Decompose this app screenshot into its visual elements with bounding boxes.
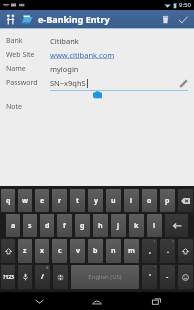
staticText: b: [93, 246, 98, 256]
staticText: j: [117, 221, 120, 231]
staticText: ': [149, 272, 151, 282]
staticText: ": [154, 265, 156, 270]
button[interactable]: mic: [18, 265, 32, 289]
button[interactable]: i: [124, 189, 139, 212]
staticText: u: [111, 196, 116, 206]
staticText: s: [28, 221, 32, 231]
button[interactable]: p: [160, 189, 175, 212]
staticText: Name: [6, 64, 50, 74]
button[interactable]: h: [93, 214, 108, 237]
staticText: l: [153, 221, 156, 231]
button[interactable]: Entry type: [19, 12, 34, 27]
button[interactable]: e: [35, 189, 49, 212]
button[interactable]: f: [57, 214, 72, 237]
button[interactable]: g: [75, 214, 90, 237]
staticText: Web Site: [6, 50, 50, 60]
staticText: ?: [172, 239, 174, 244]
button[interactable]: English (US): [71, 265, 139, 289]
button[interactable]: Save: [174, 11, 191, 28]
button[interactable]: a: [6, 214, 20, 237]
button[interactable]: j: [111, 214, 126, 237]
button[interactable]: w: [18, 189, 32, 212]
button[interactable]: t: [70, 189, 85, 212]
staticText: i: [130, 196, 133, 206]
staticText: a: [11, 221, 16, 231]
button[interactable]: b: [88, 239, 103, 263]
staticText: mylogin: [50, 64, 79, 74]
button[interactable]: Note: [0, 100, 194, 114]
staticText: o: [147, 196, 152, 206]
button[interactable]: del: [178, 189, 193, 212]
staticText: -: [166, 272, 169, 282]
button[interactable]: shift: [178, 239, 193, 263]
button[interactable]: z: [18, 239, 32, 263]
staticText: Citibank: [50, 36, 79, 46]
button[interactable]: Home: [77, 292, 117, 310]
staticText: #: [46, 265, 49, 270]
button[interactable]: ?: [160, 239, 175, 263]
staticText: ?123: [3, 274, 14, 281]
button[interactable]: k: [129, 214, 144, 237]
button[interactable]: ?123: [1, 265, 15, 289]
staticText: Password: [6, 78, 50, 88]
staticText: r: [58, 196, 62, 206]
button[interactable]: ": [142, 265, 157, 289]
button[interactable]: x: [35, 239, 49, 263]
staticText: y: [94, 196, 98, 206]
button[interactable]: shift: [1, 239, 15, 263]
staticText: n: [111, 246, 116, 256]
staticText: _: [172, 265, 174, 270]
button[interactable]: #: [35, 265, 50, 289]
staticText: c: [58, 246, 62, 256]
staticText: m: [128, 246, 135, 256]
staticText: SN~x9qhS: [50, 78, 86, 88]
staticText: q: [6, 196, 11, 206]
button[interactable]: u: [106, 189, 121, 212]
button[interactable]: Password: [0, 76, 194, 90]
staticText: t: [76, 196, 80, 206]
staticText: g: [80, 221, 85, 231]
staticText: x: [40, 246, 45, 256]
button[interactable]: q: [1, 189, 15, 212]
button[interactable]: n: [106, 239, 121, 263]
button[interactable]: d: [40, 214, 54, 237]
button[interactable]: Bank: [0, 34, 194, 48]
staticText: f: [63, 221, 66, 231]
staticText: .: [167, 246, 169, 256]
staticText: !: [154, 239, 156, 244]
button[interactable]: smiley: [178, 265, 193, 289]
staticText: d: [45, 221, 50, 231]
button[interactable]: s: [23, 214, 37, 237]
button[interactable]: c: [52, 239, 67, 263]
button[interactable]: m: [124, 239, 139, 263]
staticText: Bank: [6, 36, 50, 46]
button[interactable]: Recents: [136, 292, 176, 310]
staticText: e-Banking Entry: [38, 13, 110, 25]
button[interactable]: Web Site: [0, 48, 194, 62]
button[interactable]: enter: [165, 214, 188, 237]
button[interactable]: _: [160, 265, 175, 289]
staticText: ,: [149, 246, 151, 256]
staticText: k: [134, 221, 139, 231]
button[interactable]: Name: [0, 62, 194, 76]
button[interactable]: v: [70, 239, 85, 263]
staticText: 9:50: [179, 1, 191, 9]
staticText: h: [98, 221, 103, 231]
staticText: Note: [6, 102, 50, 112]
staticText: w: [22, 196, 28, 206]
staticText: z: [23, 246, 27, 256]
button[interactable]: Edit password: [176, 76, 190, 90]
staticText: www.citibank.com: [50, 50, 115, 60]
button[interactable]: Hide keyboard: [19, 292, 59, 310]
button[interactable]: Up: [3, 12, 18, 27]
staticText: v: [76, 246, 80, 256]
button[interactable]: r: [52, 189, 67, 212]
staticText: /: [41, 272, 44, 282]
button[interactable]: globe: [53, 265, 68, 289]
button[interactable]: Delete: [157, 11, 174, 28]
button[interactable]: y: [88, 189, 103, 212]
staticText: e: [40, 196, 45, 206]
button[interactable]: o: [142, 189, 157, 212]
button[interactable]: !: [142, 239, 157, 263]
button[interactable]: l: [147, 214, 162, 237]
